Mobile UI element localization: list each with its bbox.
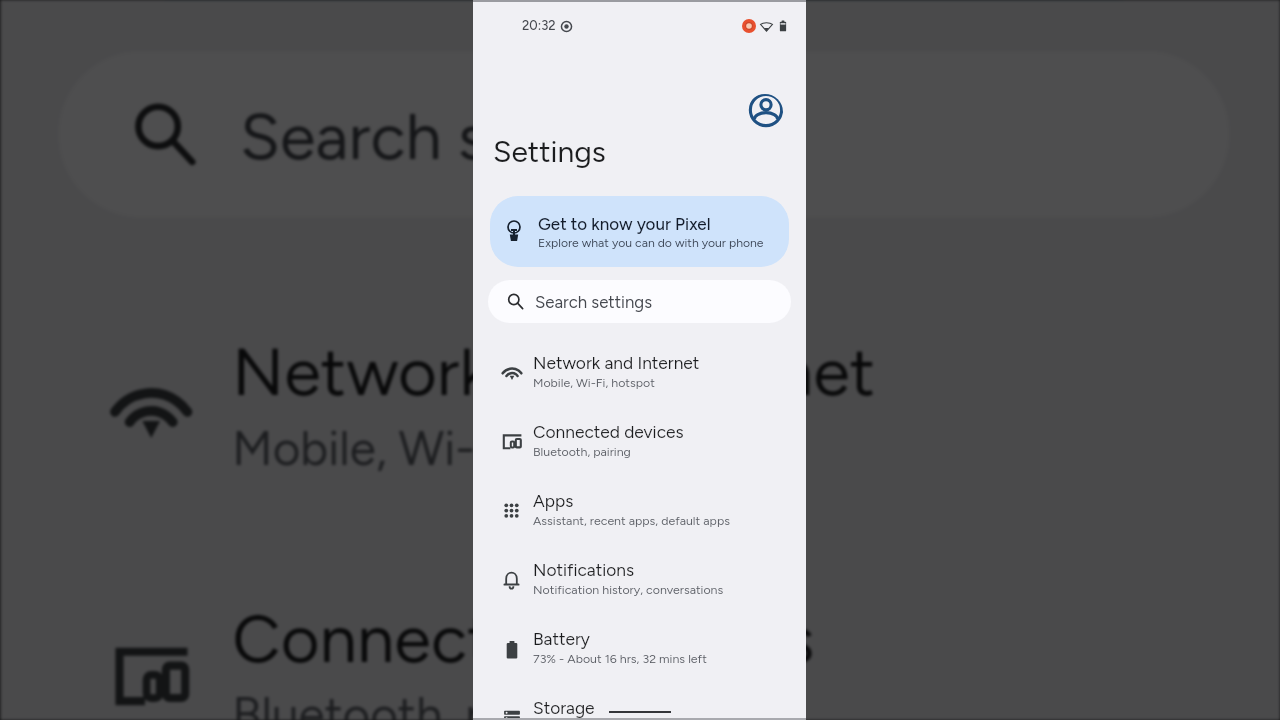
button[interactable]: Network and Internet [473, 336, 806, 405]
button[interactable]: Apps [473, 474, 806, 543]
staticText: Connected devices [232, 600, 816, 681]
staticText: Connected devices [533, 422, 684, 443]
staticText: Assistant, recent apps, default apps [533, 513, 730, 528]
staticText: Network and Internet [533, 353, 700, 374]
button[interactable]: Get to know your Pixel [66, 0, 1221, 1]
staticText: Battery [533, 629, 590, 650]
staticText: Notification history, conversations [533, 582, 724, 597]
button[interactable]: Connected devices [0, 534, 1280, 720]
button[interactable]: Connected devices [473, 405, 806, 474]
button[interactable]: Search settings [58, 51, 1229, 217]
staticText: Search settings [535, 292, 652, 312]
staticText: Bluetooth, pairing [533, 444, 631, 459]
staticText: Search settings [240, 98, 692, 175]
button[interactable]: Battery [473, 612, 806, 681]
button[interactable]: Account [747, 94, 783, 130]
button[interactable]: Get to know your Pixel [490, 196, 789, 267]
button[interactable]: Storage [473, 681, 806, 720]
staticText: Bluetooth, pairing [232, 685, 611, 720]
button[interactable]: Network and Internet [0, 268, 1280, 534]
staticText: Mobile, Wi-Fi, hotspot [232, 418, 704, 476]
staticText: Apps [533, 491, 574, 512]
staticText: 20:32 [522, 18, 556, 34]
staticText: 73% - About 16 hrs, 32 mins left [533, 651, 707, 666]
staticText: Settings [493, 133, 606, 169]
staticText: Network and Internet [232, 333, 878, 414]
staticText: Notifications [533, 560, 635, 581]
staticText: Mobile, Wi-Fi, hotspot [533, 375, 655, 390]
staticText: Storage [533, 698, 595, 719]
staticText: Explore what you can do with your phone [538, 235, 764, 250]
button[interactable]: Search settings [488, 280, 791, 323]
button[interactable]: Notifications [473, 543, 806, 612]
staticText: Get to know your Pixel [538, 214, 711, 234]
